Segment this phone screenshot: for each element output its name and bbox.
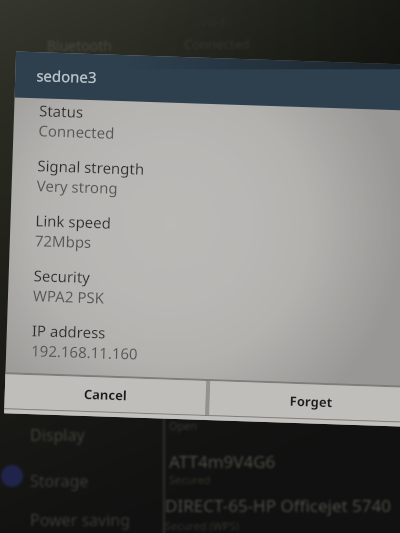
staticText: Connected xyxy=(38,120,115,143)
staticText: Secured xyxy=(169,472,211,487)
staticText: Secured (WPS) xyxy=(165,518,239,533)
button[interactable]: Forget xyxy=(209,381,400,421)
staticText: DIRECT-65-HP Officejet 5740 xyxy=(165,494,391,517)
staticText: sedone3 xyxy=(36,65,98,87)
staticText: 72Mbps xyxy=(34,230,92,252)
staticText: Security xyxy=(33,265,91,287)
staticText: ATT4m9V4G6 xyxy=(169,450,276,473)
staticText: Very strong xyxy=(36,175,118,198)
staticText: Open xyxy=(169,418,198,433)
staticText: Status xyxy=(39,100,83,122)
staticText: Link speed xyxy=(35,210,112,233)
staticText: WPA2 PSK xyxy=(33,285,104,307)
staticText: Display xyxy=(30,424,85,446)
staticText: 192.168.11.160 xyxy=(31,340,138,364)
staticText: IP address xyxy=(31,320,106,343)
staticText: Storage xyxy=(30,470,89,492)
staticText: Bluetooth xyxy=(47,36,112,55)
staticText: Forget xyxy=(289,392,333,411)
staticText: Signal strength xyxy=(37,155,145,179)
button[interactable]: Cancel xyxy=(4,374,206,415)
staticText: Power saving xyxy=(30,509,131,531)
staticText: Cancel xyxy=(83,385,127,404)
